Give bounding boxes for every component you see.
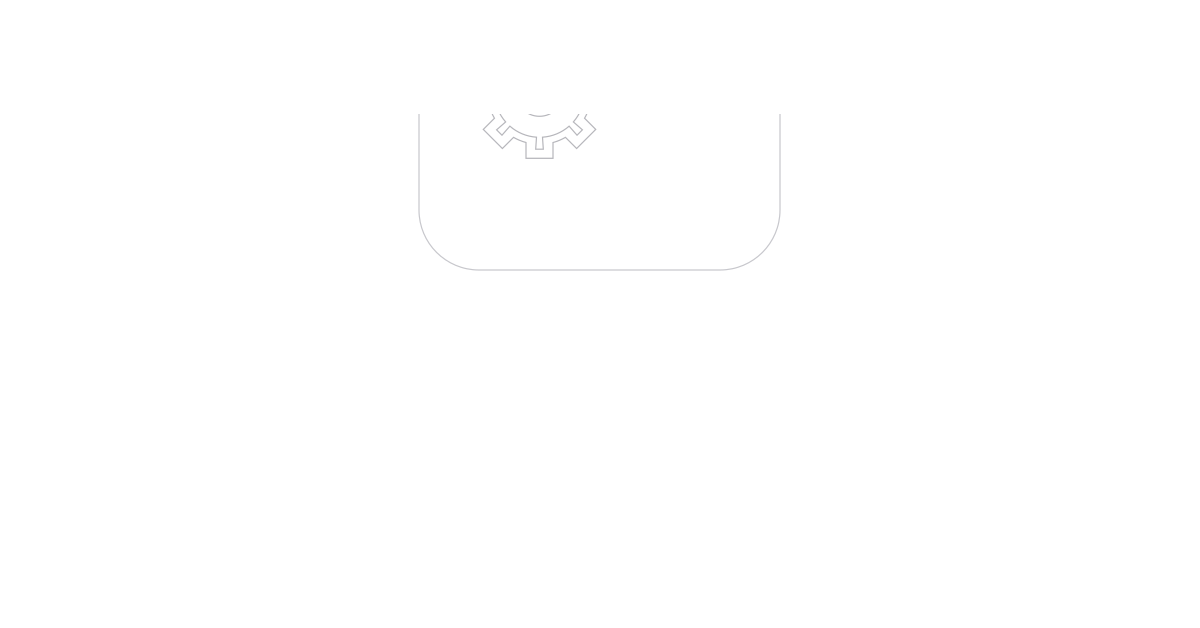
button[interactable]: Settings [419, 0, 780, 270]
